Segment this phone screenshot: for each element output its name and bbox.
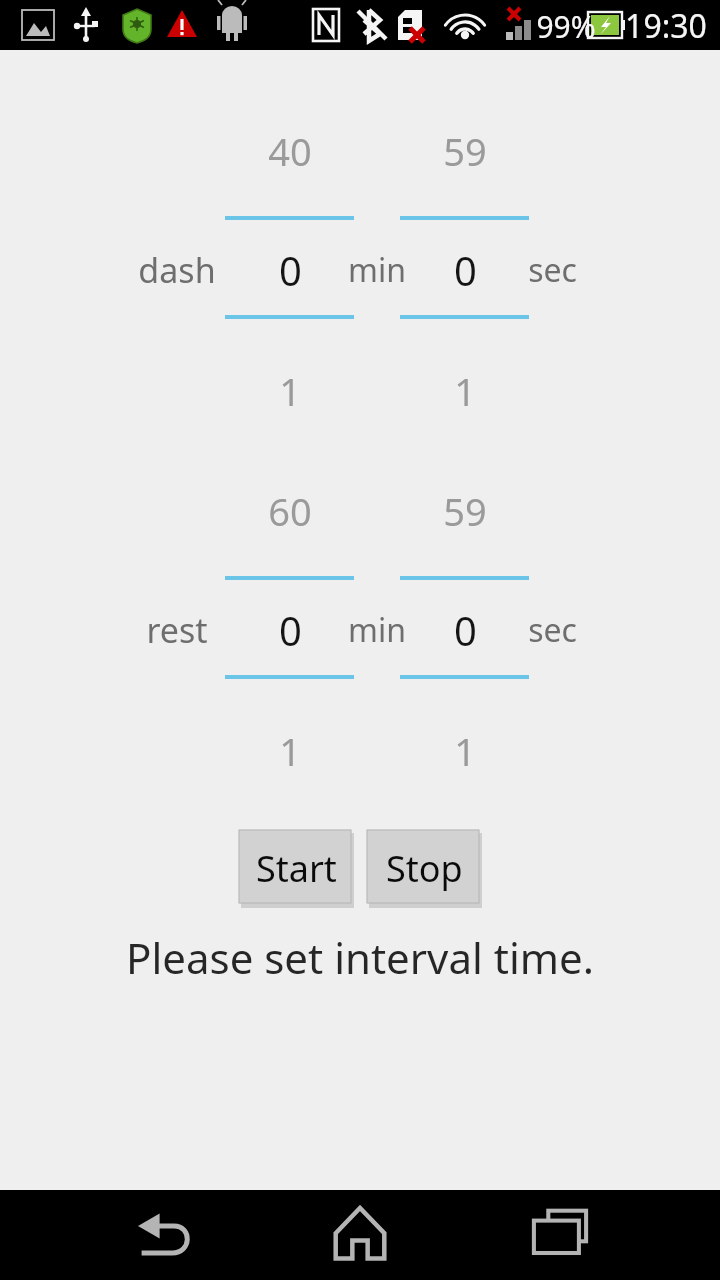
button[interactable]: Back <box>120 1190 210 1280</box>
staticText: Please set interval time. <box>126 929 594 986</box>
staticText: min <box>348 608 406 652</box>
staticText: min <box>348 248 406 292</box>
staticText: 99% <box>536 6 596 47</box>
staticText: 1 <box>279 365 301 417</box>
staticText: 59 <box>443 125 487 177</box>
button[interactable]: Home <box>315 1190 405 1280</box>
staticText: 0 <box>279 603 302 657</box>
staticText: 60 <box>268 485 312 537</box>
staticText: 0 <box>454 243 477 297</box>
staticText: 19:30 <box>625 4 707 48</box>
staticText: rest <box>146 607 208 653</box>
staticText: Start <box>256 844 337 893</box>
staticText: 0 <box>279 243 302 297</box>
staticText: sec <box>528 248 577 292</box>
staticText: Stop <box>386 844 463 893</box>
staticText: 1 <box>454 725 476 777</box>
staticText: 1 <box>279 725 301 777</box>
staticText: 1 <box>454 365 476 417</box>
button[interactable]: Stop <box>367 830 481 906</box>
staticText: 40 <box>268 125 312 177</box>
button[interactable]: Start <box>239 830 353 906</box>
staticText: 59 <box>443 485 487 537</box>
staticText: dash <box>138 247 216 293</box>
button[interactable]: Recents <box>515 1190 605 1280</box>
staticText: 0 <box>454 603 477 657</box>
staticText: sec <box>528 608 577 652</box>
